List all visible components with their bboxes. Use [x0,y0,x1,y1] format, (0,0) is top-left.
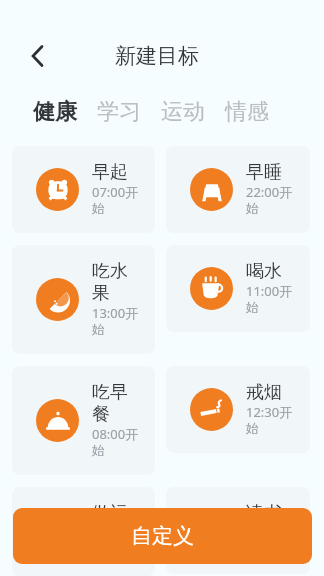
staticText: 13:00开始 [92,305,140,338]
button[interactable]: 做运动 [12,487,155,576]
button[interactable]: 喝水 [166,245,310,332]
button[interactable]: Back [21,39,55,73]
staticText: 读书 [246,503,282,525]
staticText: 戒烟 [246,382,282,404]
button[interactable]: 自定义 [13,508,312,564]
button[interactable]: 学习 [97,98,141,126]
button[interactable]: 运动 [161,98,205,126]
button[interactable]: 戒烟 [166,366,310,453]
staticText: 新建目标 [115,43,199,69]
staticText: 11:00开始 [246,283,295,316]
staticText: 运动 [161,98,205,126]
button[interactable]: 健康 [33,98,77,126]
staticText: 早睡 [246,162,282,184]
staticText: 自定义 [131,523,194,549]
button[interactable]: 早起 [12,146,155,233]
staticText: 学习 [97,98,141,126]
button[interactable]: 早睡 [166,146,310,233]
button[interactable]: 情感 [225,98,269,126]
staticText: 12:30开始 [246,404,295,437]
staticText: 吃早餐 [92,382,140,426]
staticText: 做运动 [92,503,140,547]
button[interactable]: 吃水果 [12,245,155,354]
staticText: 情感 [225,98,269,126]
staticText: 健康 [33,98,77,126]
staticText: 07:00开始 [92,184,140,217]
staticText: 22:00开始 [246,184,295,217]
button[interactable]: 吃早餐 [12,366,155,475]
button[interactable]: 读书 [166,487,310,574]
staticText: 喝水 [246,261,282,283]
staticText: 吃水果 [92,261,140,305]
staticText: 早起 [92,162,128,184]
staticText: 08:00开始 [92,426,140,459]
